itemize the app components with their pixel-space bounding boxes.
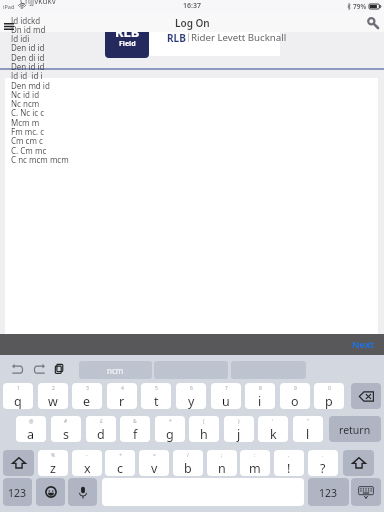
button[interactable]: 3 [72, 383, 102, 409]
staticText: * [169, 418, 172, 425]
staticText: ) [238, 418, 240, 425]
staticText: RLB [115, 23, 140, 41]
staticText: : [254, 452, 256, 459]
button[interactable]: Redo [32, 362, 46, 376]
button[interactable]: 4 [107, 383, 137, 409]
staticText: h [200, 426, 208, 442]
button[interactable]: 1 [3, 383, 33, 409]
button[interactable]: ( [189, 416, 219, 442]
staticText: 8 [259, 385, 262, 392]
button[interactable]: Jd jdckd [5, 15, 75, 24]
staticText: Den md jd [11, 80, 50, 89]
button[interactable]: Shift [343, 450, 374, 476]
button[interactable]: " [293, 416, 323, 442]
staticText: Fm mc, c [11, 126, 45, 135]
staticText: r [119, 393, 125, 409]
staticText: Nc ncm [11, 98, 40, 107]
button[interactable]: Den jd jd [5, 42, 75, 51]
staticText: 6 [190, 385, 193, 392]
button[interactable]: Fm mc, c [5, 126, 75, 135]
button[interactable]: ' [258, 416, 288, 442]
button[interactable]: Den jd jd [5, 61, 75, 70]
button[interactable]: 2 [38, 383, 68, 409]
button[interactable]: C nc mcm mcm [5, 154, 75, 163]
button[interactable]: ncm [79, 361, 152, 379]
button[interactable]: = [139, 450, 169, 476]
button[interactable]: Jd jdj [5, 33, 75, 42]
button[interactable]: 8 [245, 383, 275, 409]
button[interactable]: C. Cm mc [5, 145, 75, 154]
button[interactable]: & [120, 416, 150, 442]
button[interactable]: Dictate [68, 478, 97, 506]
button[interactable]: C. Nc jc c [5, 107, 75, 116]
button[interactable]: # [51, 416, 81, 442]
button[interactable]: Menu [2, 19, 16, 33]
button[interactable]: Nc ncm [5, 98, 75, 107]
button[interactable]: Cm cm c [5, 135, 75, 144]
staticText: 1 [17, 385, 20, 392]
button[interactable]: @ [16, 416, 46, 442]
staticText: C. Cm mc [11, 145, 47, 154]
button[interactable]: / [173, 450, 203, 476]
button[interactable]: £ [86, 416, 116, 442]
button[interactable]: + [105, 450, 135, 476]
button[interactable]: ; [207, 450, 237, 476]
staticText: a [27, 426, 35, 442]
staticText: o [291, 393, 299, 409]
staticText: ' [272, 418, 274, 425]
button[interactable]: - [72, 450, 102, 476]
button[interactable]: , [274, 450, 304, 476]
button[interactable]: ) [224, 416, 254, 442]
staticText: # [64, 418, 68, 425]
button[interactable]: Undo [11, 362, 25, 376]
staticText: C. Nc jc c [11, 107, 45, 116]
button[interactable]: 9 [280, 383, 310, 409]
staticText: y [188, 393, 195, 409]
button[interactable]: 0 [314, 383, 344, 409]
staticText: 0 [328, 385, 331, 392]
button[interactable]: % [38, 450, 68, 476]
staticText: " [307, 418, 310, 425]
button[interactable]: Nc jd jd [5, 89, 75, 98]
button[interactable]: 7 [211, 383, 241, 409]
staticText: Mcm m [11, 117, 40, 126]
staticText: b [184, 460, 192, 476]
button[interactable]: 123 [308, 478, 349, 506]
staticText: = [153, 452, 156, 459]
button[interactable]: 5 [141, 383, 171, 409]
staticText: 5 [155, 385, 158, 392]
button[interactable]: Paste [53, 362, 66, 375]
button[interactable]: Den md jd [5, 80, 75, 89]
button[interactable]: 6 [176, 383, 206, 409]
button[interactable]: * [155, 416, 185, 442]
button[interactable]: return [329, 416, 381, 442]
button[interactable]: . [308, 450, 338, 476]
button[interactable]: Den dj jd [5, 52, 75, 61]
button[interactable]: Dn jd md [5, 24, 75, 33]
staticText: s [63, 426, 69, 442]
staticText: 3 [86, 385, 89, 392]
button[interactable]: Next [350, 338, 377, 351]
staticText: Chjjvkdkv [20, 0, 56, 6]
button[interactable]: Emoji [36, 478, 65, 506]
button[interactable]: Backspace [351, 383, 381, 409]
staticText: RLB [167, 31, 186, 43]
button[interactable]: : [240, 450, 270, 476]
button[interactable]: Hide keyboard [351, 478, 381, 506]
button[interactable]: Jd jd jd j [5, 70, 75, 79]
button[interactable]: Search [362, 14, 384, 32]
button[interactable]: 123 [3, 478, 32, 506]
staticText: l [306, 426, 310, 442]
button[interactable]: Shift [3, 450, 34, 476]
button[interactable]: Mcm m [5, 117, 75, 126]
staticText: 7 [225, 385, 228, 392]
staticText: 123 [8, 486, 27, 500]
staticText: Den jd jd [11, 61, 45, 70]
staticText: 16:37 [183, 1, 201, 11]
staticText: u [222, 393, 230, 409]
staticText: Jd jd jd j [11, 70, 43, 79]
staticText: 123 [319, 486, 338, 500]
